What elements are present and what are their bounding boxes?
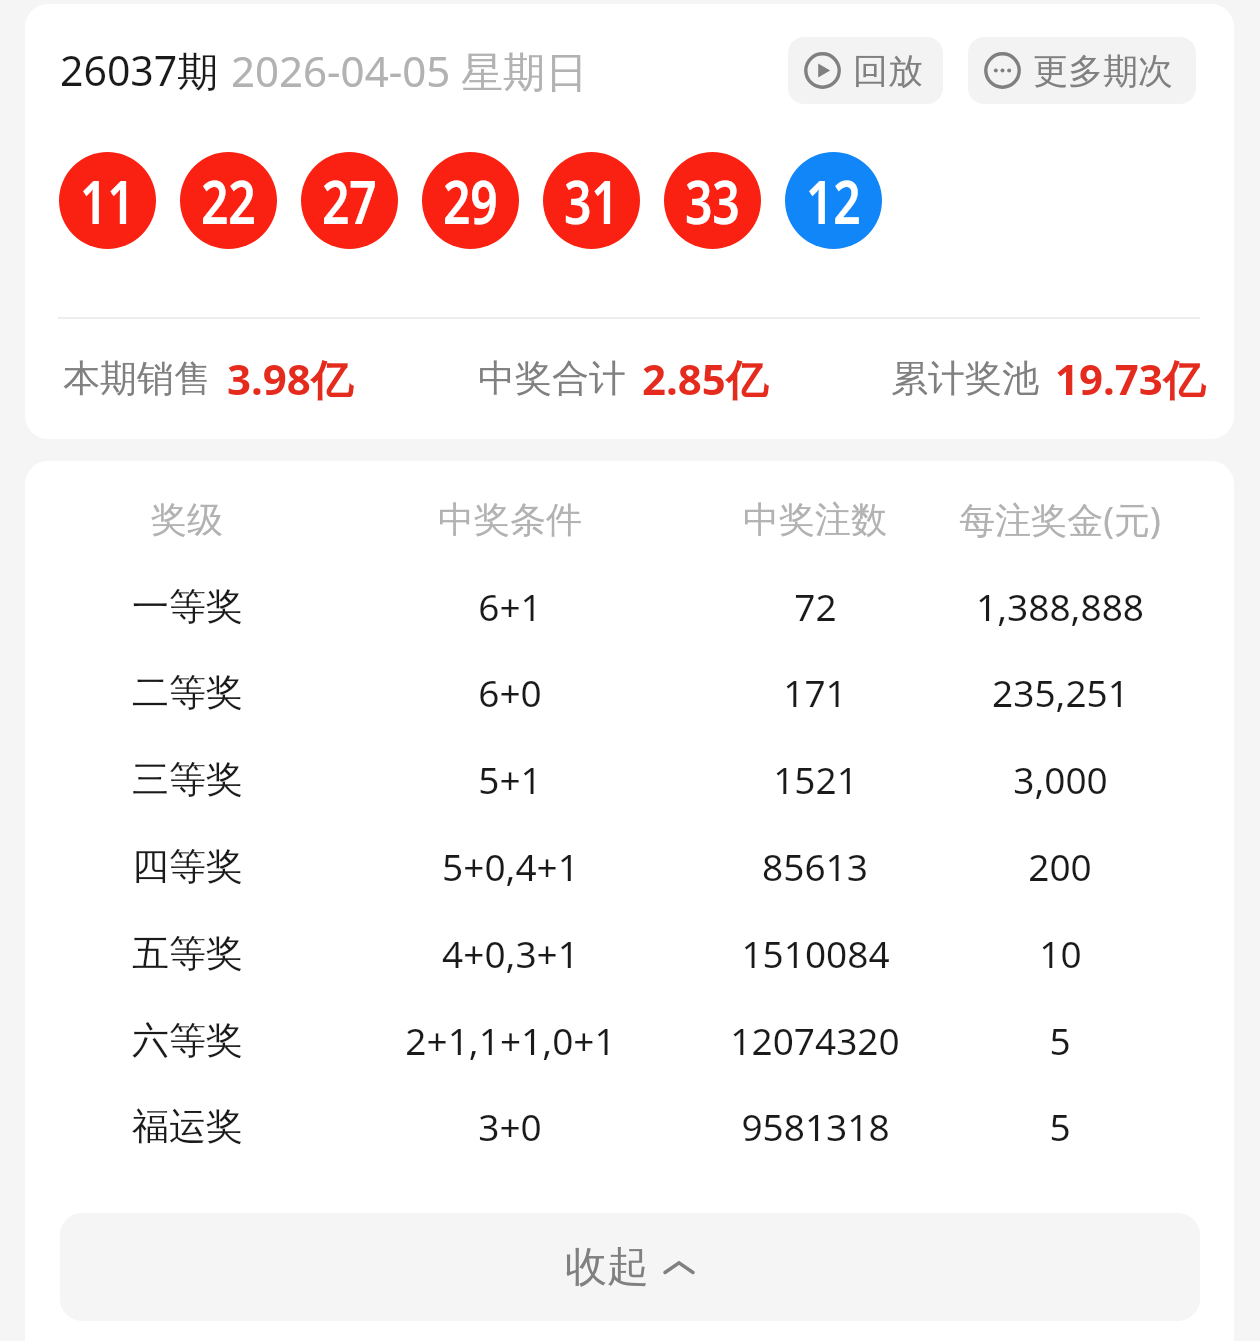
staticText: 10 [1039,928,1082,978]
staticText: 更多期次 [1033,49,1173,93]
staticText: 72 [794,581,837,631]
staticText: 本期销售 [63,355,211,402]
staticText: 5 [1049,1101,1071,1151]
staticText: 4+0,3+1 [442,928,579,978]
staticText: 一等奖 [132,583,243,630]
button[interactable]: 三等奖 [25,749,1234,809]
staticText: 171 [783,667,847,717]
staticText: 1,388,888 [976,581,1144,631]
staticText: 11 [80,160,135,242]
staticText: 31 [564,160,619,242]
staticText: 85613 [762,841,868,891]
button[interactable]: 五等奖 [25,923,1234,983]
staticText: 6+0 [478,667,542,717]
staticText: 2026-04-05 星期日 [231,42,588,99]
staticText: 中奖合计 [478,355,626,402]
staticText: 9581318 [741,1101,890,1151]
staticText: 四等奖 [132,843,243,890]
staticText: 22 [201,160,256,242]
staticText: 19.73亿 [1055,350,1205,407]
button[interactable]: 收起 [60,1213,1200,1321]
staticText: 33 [685,160,740,242]
button[interactable]: 一等奖 [25,576,1234,636]
staticText: 1521 [773,754,858,804]
staticText: 5+1 [478,754,542,804]
staticText: 二等奖 [132,669,243,716]
staticText: 1510084 [741,928,890,978]
button[interactable]: 累计奖池 [891,346,1230,410]
staticText: 29 [443,160,498,242]
button[interactable]: 开奖号码 11 22 27 29 31 33 12 [59,152,882,249]
staticText: 3+0 [478,1101,542,1151]
button[interactable]: 二等奖 [25,662,1234,722]
staticText: 5 [1049,1015,1071,1065]
button[interactable]: 中奖合计 [478,346,817,410]
button[interactable]: 福运奖 [25,1096,1234,1156]
staticText: 奖级 [151,497,223,542]
staticText: 六等奖 [132,1017,243,1064]
staticText: 福运奖 [132,1103,243,1150]
button[interactable]: 更多期次 [968,37,1196,104]
button[interactable]: 六等奖 [25,1010,1234,1070]
staticText: 12074320 [730,1015,900,1065]
staticText: 中奖注数 [743,497,887,542]
staticText: 2.85亿 [642,350,768,407]
button[interactable]: 回放 [788,37,943,104]
staticText: 27 [322,160,377,242]
staticText: 收起 [565,1241,649,1294]
staticText: 每注奖金(元) [959,495,1161,544]
button[interactable]: 本期销售 [63,346,402,410]
staticText: 12 [806,160,861,242]
staticText: 回放 [853,49,923,93]
staticText: 2+1,1+1,0+1 [405,1015,616,1065]
staticText: 中奖条件 [438,497,582,542]
staticText: 5+0,4+1 [442,841,579,891]
staticText: 3.98亿 [227,350,353,407]
staticText: 26037期 [60,42,219,98]
staticText: 6+1 [478,581,542,631]
staticText: 3,000 [1013,754,1108,804]
staticText: 累计奖池 [891,355,1039,402]
button[interactable]: 四等奖 [25,836,1234,896]
staticText: 235,251 [992,667,1129,717]
staticText: 五等奖 [132,930,243,977]
staticText: 200 [1028,841,1092,891]
staticText: 三等奖 [132,756,243,803]
